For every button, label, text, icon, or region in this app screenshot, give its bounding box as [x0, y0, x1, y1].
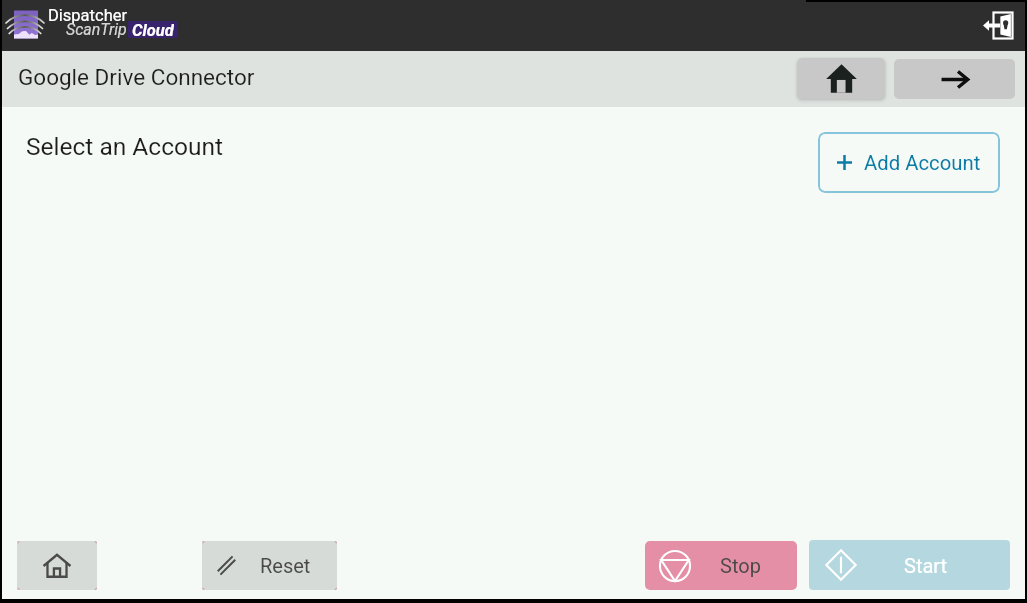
button[interactable]: Home [17, 541, 97, 590]
button[interactable]: Log out [980, 7, 1016, 43]
staticText: Reset [260, 554, 311, 577]
staticText: Stop [720, 554, 761, 577]
staticText: Dispatcher [48, 6, 128, 25]
staticText: Cloud [132, 21, 174, 38]
button[interactable]: Stop [645, 541, 797, 590]
button[interactable]: Start [809, 540, 1010, 590]
button[interactable]: Next [894, 59, 1015, 99]
staticText: ScanTrip [66, 20, 127, 39]
staticText: Google Drive Connector [18, 64, 255, 90]
button[interactable]: Add Account [818, 132, 1000, 193]
staticText: Add Account [864, 151, 981, 175]
button[interactable]: Reset [202, 541, 337, 590]
button[interactable]: Home [797, 58, 885, 99]
staticText: Select an Account [26, 132, 223, 161]
staticText: Start [904, 554, 948, 577]
